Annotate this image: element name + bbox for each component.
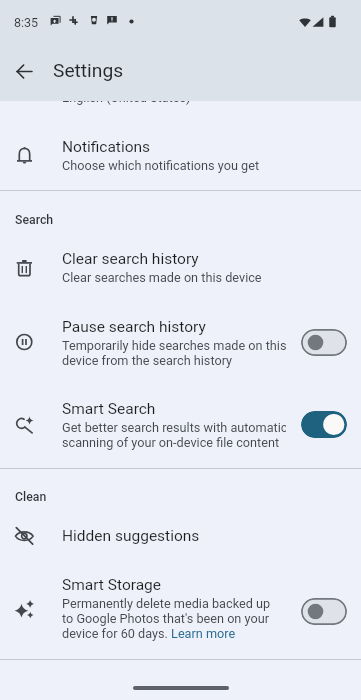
staticText: Settings [53,59,124,82]
staticText: Permanently delete media backed up to Go… [62,596,271,641]
staticText: 8:35 [14,15,39,30]
staticText: Clear search history [62,250,199,268]
button[interactable]: Off [301,329,347,356]
staticText: Smart Storage [62,576,162,594]
staticText: Hidden suggestions [62,527,200,545]
staticText: Smart Search [62,400,156,418]
button[interactable]: Pause search history [62,318,286,368]
button[interactable]: Off [301,598,347,625]
staticText: Clear searches made on this device [62,270,262,285]
staticText: Pause search history [62,318,206,336]
button[interactable]: Smart Storage [62,576,286,641]
button[interactable]: Smart Search [62,400,286,450]
staticText: Get better search results with automatic… [62,420,286,450]
button[interactable]: Clear search history [62,250,286,285]
button[interactable]: Back [8,55,41,88]
staticText: Notifications [62,138,151,156]
staticText: Clean [15,490,47,504]
staticText: Search [15,213,54,227]
staticText: English (United States) [62,90,191,105]
button[interactable]: Hidden suggestions [62,527,286,547]
staticText: Choose which notifications you get [62,158,260,173]
staticText: Temporarily hide searches made on this d… [62,338,286,368]
button[interactable]: On [301,411,347,438]
button[interactable]: Notifications [62,138,286,173]
